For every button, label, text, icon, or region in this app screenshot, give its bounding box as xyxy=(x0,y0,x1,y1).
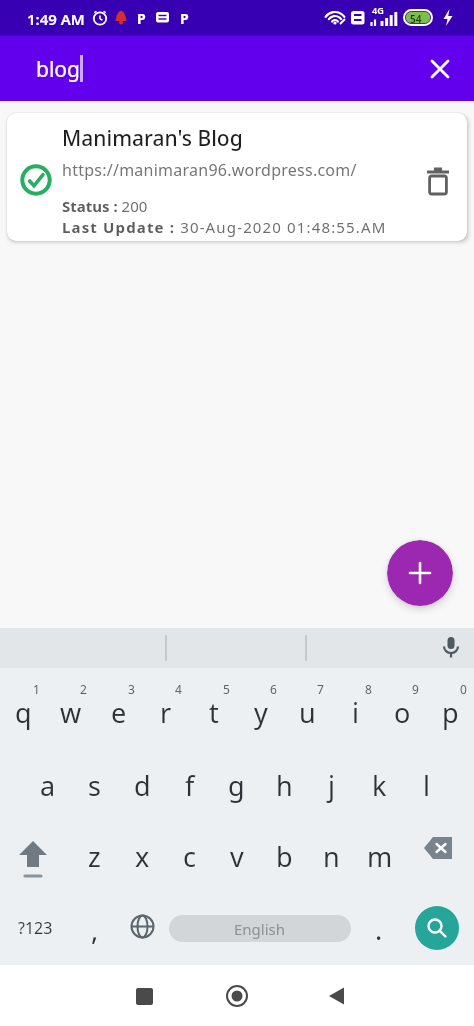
staticText: P xyxy=(180,9,189,28)
staticText: Manimaran's Blog xyxy=(62,124,243,153)
button[interactable]: s xyxy=(71,740,118,812)
staticText: 7 xyxy=(317,681,324,697)
staticText: x xyxy=(135,838,150,875)
button[interactable]: m xyxy=(356,812,403,884)
staticText: p xyxy=(442,694,459,731)
staticText: 54 xyxy=(410,12,422,26)
button[interactable]: e xyxy=(95,668,142,740)
button[interactable] xyxy=(7,113,467,241)
button[interactable]: p xyxy=(427,668,474,740)
staticText: o xyxy=(394,694,411,731)
staticText: 1 xyxy=(33,681,40,697)
staticText: English xyxy=(234,919,286,939)
staticText: blog xyxy=(36,55,80,84)
button[interactable] xyxy=(112,972,176,1020)
button[interactable]: g xyxy=(213,740,260,812)
button[interactable]: h xyxy=(261,740,308,812)
button[interactable]: English xyxy=(169,915,351,942)
staticText: s xyxy=(88,767,101,804)
button[interactable] xyxy=(205,972,269,1020)
staticText: 2 xyxy=(80,681,87,697)
button[interactable] xyxy=(119,884,166,965)
staticText: m xyxy=(367,838,393,875)
staticText: 6 xyxy=(270,681,277,697)
button[interactable]: r xyxy=(142,668,189,740)
staticText: https://manimaran96.wordpress.com/ xyxy=(62,159,357,181)
staticText: v xyxy=(230,838,244,875)
staticText: d xyxy=(134,767,151,804)
button[interactable]: l xyxy=(403,740,450,812)
staticText: b xyxy=(276,838,293,875)
staticText: 4G xyxy=(372,4,384,16)
staticText: l xyxy=(423,767,430,804)
staticText: . xyxy=(375,911,383,948)
button[interactable]: o xyxy=(379,668,426,740)
staticText: i xyxy=(352,694,359,731)
staticText: 8 xyxy=(365,681,372,697)
staticText: , xyxy=(91,911,99,948)
button[interactable]: v xyxy=(213,812,260,884)
staticText: 0 xyxy=(460,681,467,697)
button[interactable]: c xyxy=(166,812,213,884)
button[interactable] xyxy=(0,812,71,884)
staticText: g xyxy=(228,767,245,804)
button[interactable] xyxy=(415,906,459,950)
button[interactable]: n xyxy=(308,812,355,884)
button[interactable]: , xyxy=(71,884,118,965)
button[interactable]: k xyxy=(356,740,403,812)
staticText: f xyxy=(185,767,195,804)
staticText: 1:49 AM xyxy=(27,9,85,29)
staticText: 9 xyxy=(412,681,419,697)
staticText: z xyxy=(88,838,101,875)
button[interactable]: t xyxy=(190,668,237,740)
staticText: y xyxy=(254,694,268,731)
staticText: Last Update : 30-Aug-2020 01:48:55.AM xyxy=(62,217,387,237)
staticText: j xyxy=(328,767,335,804)
button[interactable] xyxy=(418,47,462,91)
button[interactable]: z xyxy=(71,812,118,884)
button[interactable] xyxy=(403,812,474,884)
staticText: u xyxy=(299,694,316,731)
button[interactable]: u xyxy=(284,668,331,740)
staticText: 5 xyxy=(223,681,230,697)
button[interactable]: f xyxy=(166,740,213,812)
button[interactable]: b xyxy=(261,812,308,884)
staticText: a xyxy=(40,767,56,804)
staticText: ?123 xyxy=(18,917,53,939)
staticText: n xyxy=(323,838,340,875)
button[interactable]: ?123 xyxy=(0,884,71,965)
staticText: Status : 200 xyxy=(62,196,148,216)
staticText: q xyxy=(15,694,32,731)
button[interactable]: i xyxy=(332,668,379,740)
button[interactable]: a xyxy=(24,740,71,812)
button[interactable] xyxy=(304,972,368,1020)
button[interactable]: d xyxy=(119,740,166,812)
staticText: P xyxy=(137,9,146,28)
staticText: h xyxy=(276,767,293,804)
staticText: k xyxy=(372,767,387,804)
button[interactable] xyxy=(387,540,453,606)
staticText: r xyxy=(160,694,172,731)
button[interactable]: y xyxy=(237,668,284,740)
button[interactable]: q xyxy=(0,668,47,740)
staticText: w xyxy=(60,694,82,731)
staticText: t xyxy=(209,694,219,731)
button[interactable]: x xyxy=(119,812,166,884)
staticText: c xyxy=(183,838,196,875)
button[interactable] xyxy=(428,628,474,668)
button[interactable]: w xyxy=(47,668,94,740)
button[interactable]: . xyxy=(355,884,402,965)
button[interactable]: j xyxy=(308,740,355,812)
staticText: 3 xyxy=(128,681,135,697)
button[interactable] xyxy=(414,156,462,204)
staticText: e xyxy=(111,694,127,731)
staticText: 4 xyxy=(175,681,182,697)
